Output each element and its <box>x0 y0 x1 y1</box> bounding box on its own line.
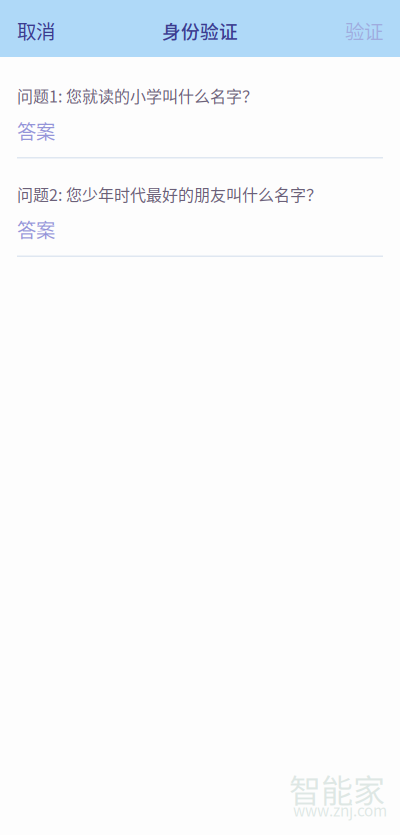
staticText: 问题1: 您就读的小学叫什么名字？ <box>17 84 258 107</box>
staticText: 答案 <box>17 215 55 243</box>
staticText: 取消 <box>17 16 55 45</box>
staticText: 答案 <box>17 116 55 144</box>
staticText: 身份验证 <box>162 17 238 44</box>
button[interactable]: 答案 <box>0 120 400 140</box>
button[interactable]: 取消 <box>0 0 72 57</box>
button[interactable]: 验证 <box>328 0 400 57</box>
staticText: 问题2: 您少年时代最好的朋友叫什么名字？ <box>17 182 322 206</box>
button[interactable]: 答案 <box>0 219 400 239</box>
staticText: 验证 <box>345 16 383 45</box>
staticText: www.znj.com <box>293 799 387 821</box>
staticText: 智能家 <box>289 765 385 812</box>
